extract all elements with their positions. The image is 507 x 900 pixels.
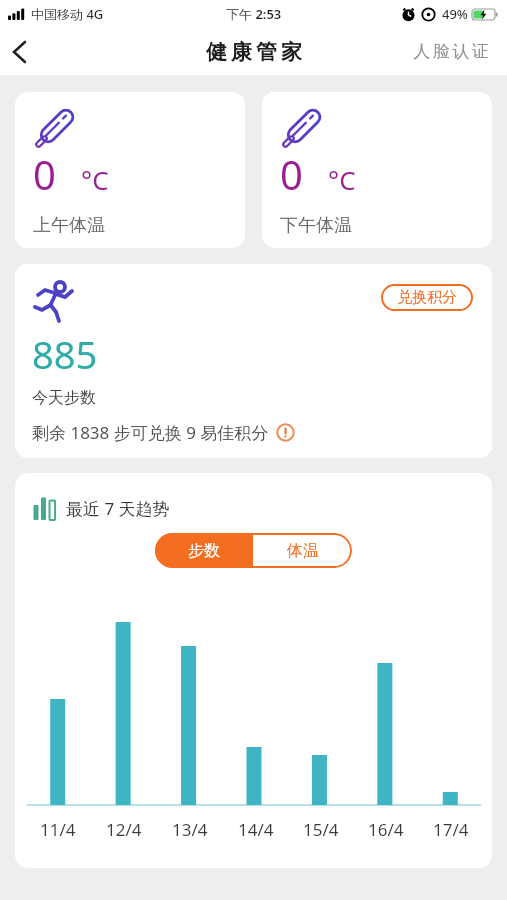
staticText: 0 — [280, 147, 303, 201]
staticText: 人脸认证 — [412, 41, 490, 62]
button[interactable]: 0 — [15, 92, 245, 248]
staticText: 13/4 — [172, 818, 208, 841]
staticText: 16/4 — [368, 818, 404, 841]
button[interactable]: 体温 — [253, 533, 352, 568]
button[interactable] — [0, 32, 40, 72]
staticText: 今天步数 — [32, 388, 96, 408]
staticText: 剩余 1838 步可兑换 9 易佳积分 — [32, 421, 269, 444]
button[interactable]: 步数 — [155, 533, 253, 568]
staticText: °C — [328, 162, 356, 197]
staticText: 下午体温 — [280, 214, 352, 237]
staticText: 兑换积分 — [397, 288, 457, 307]
button[interactable]: 兑换积分 — [381, 284, 473, 311]
staticText: 健康管家 — [204, 39, 304, 65]
staticText: 下午 2:53 — [226, 5, 282, 23]
staticText: 最近 7 天趋势 — [66, 497, 170, 520]
staticText: 14/4 — [238, 818, 274, 841]
staticText: 49% — [442, 5, 468, 23]
button[interactable]: 0 — [262, 92, 492, 248]
staticText: 17/4 — [433, 818, 469, 841]
staticText: 15/4 — [303, 818, 339, 841]
staticText: 885 — [32, 328, 98, 380]
staticText: 体温 — [287, 541, 319, 561]
button[interactable]: 人脸认证 — [402, 41, 507, 62]
staticText: 上午体温 — [33, 214, 105, 237]
staticText: 0 — [33, 147, 56, 201]
staticText: 步数 — [188, 541, 220, 561]
button[interactable] — [276, 423, 295, 442]
staticText: °C — [81, 162, 109, 197]
staticText: 中国移动 4G — [31, 5, 104, 23]
staticText: 12/4 — [106, 818, 142, 841]
staticText: 11/4 — [40, 818, 76, 841]
